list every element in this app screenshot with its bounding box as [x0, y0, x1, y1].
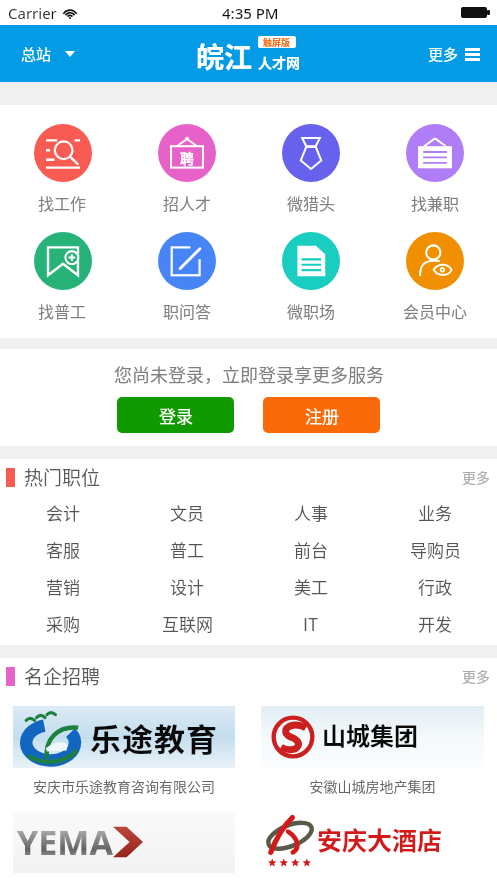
- staticText: 业务: [418, 504, 452, 524]
- staticText: 人事: [294, 504, 328, 524]
- staticText: 人才网: [258, 52, 300, 72]
- staticText: 招人才: [163, 196, 212, 213]
- staticText: 安徽山城房地产集团: [261, 776, 484, 796]
- staticText: 设计: [170, 578, 204, 598]
- staticText: 行政: [418, 578, 452, 598]
- staticText: 文员: [170, 504, 204, 524]
- button[interactable]: 会计: [0, 495, 125, 532]
- staticText: 职问答: [163, 304, 212, 321]
- button[interactable]: 微猎头: [249, 105, 373, 213]
- button[interactable]: 业务: [373, 495, 497, 532]
- staticText: 4:35 PM: [222, 3, 279, 23]
- staticText: 皖江: [196, 36, 253, 77]
- button[interactable]: 互联网: [125, 606, 249, 643]
- button[interactable]: IT: [249, 606, 373, 643]
- staticText: 热门职位: [24, 463, 101, 491]
- staticText: 更多: [462, 668, 490, 685]
- button[interactable]: 客服: [0, 532, 125, 569]
- staticText: 会员中心: [403, 304, 468, 321]
- staticText: 微职场: [287, 304, 336, 321]
- staticText: 登录: [159, 403, 193, 428]
- button[interactable]: 文员: [125, 495, 249, 532]
- button[interactable]: 总站: [0, 33, 87, 75]
- button[interactable]: 山城集团: [261, 706, 484, 796]
- staticText: 安庆大酒店: [317, 829, 443, 855]
- button[interactable]: 聘: [125, 105, 249, 213]
- button[interactable]: 职问答: [125, 213, 249, 321]
- button[interactable]: 微职场: [249, 213, 373, 321]
- staticText: 总站: [21, 43, 52, 65]
- staticText: 营销: [46, 578, 80, 598]
- staticText: YEMA: [17, 819, 113, 865]
- button[interactable]: 导购员: [373, 532, 497, 569]
- button[interactable]: 行政: [373, 569, 497, 606]
- staticText: 找兼职: [411, 196, 460, 213]
- staticText: 客服: [46, 541, 80, 561]
- button[interactable]: 找普工: [0, 213, 125, 321]
- staticText: 更多: [462, 469, 490, 486]
- staticText: 开发: [418, 615, 452, 635]
- staticText: 互联网: [162, 615, 213, 635]
- button[interactable]: 人事: [249, 495, 373, 532]
- staticText: 采购: [46, 615, 80, 635]
- button[interactable]: 普工: [125, 532, 249, 569]
- staticText: 找普工: [38, 304, 87, 321]
- staticText: 您尚未登录，立即登录享更多服务: [114, 361, 384, 387]
- staticText: 注册: [305, 403, 339, 428]
- staticText: 乐途教育: [90, 715, 218, 760]
- button[interactable]: 美工: [249, 569, 373, 606]
- staticText: 山城集团: [322, 725, 418, 750]
- staticText: 触屏版: [263, 36, 291, 48]
- button[interactable]: 会员中心: [373, 213, 497, 321]
- button[interactable]: 安庆大酒店: [261, 811, 484, 883]
- button[interactable]: YEMA: [13, 811, 235, 883]
- button[interactable]: 更多: [455, 660, 497, 693]
- button[interactable]: 找工作: [0, 105, 125, 213]
- staticText: 更多: [428, 43, 459, 65]
- staticText: Carrier: [8, 3, 57, 23]
- button[interactable]: 采购: [0, 606, 125, 643]
- staticText: 安庆市乐途教育咨询有限公司: [13, 776, 235, 796]
- staticText: 美工: [294, 578, 328, 598]
- button[interactable]: 找兼职: [373, 105, 497, 213]
- staticText: 导购员: [410, 541, 461, 561]
- staticText: IT: [303, 615, 319, 635]
- button[interactable]: 注册: [263, 397, 380, 433]
- button[interactable]: 开发: [373, 606, 497, 643]
- button[interactable]: 设计: [125, 569, 249, 606]
- staticText: 微猎头: [287, 196, 336, 213]
- staticText: 名企招聘: [24, 662, 101, 690]
- staticText: 聘: [180, 148, 194, 168]
- staticText: 找工作: [38, 196, 87, 213]
- button[interactable]: 更多: [455, 461, 497, 494]
- staticText: 普工: [170, 541, 204, 561]
- button[interactable]: 乐途教育: [13, 706, 235, 796]
- staticText: 前台: [294, 541, 328, 561]
- staticText: 会计: [46, 504, 80, 524]
- button[interactable]: 登录: [117, 397, 234, 433]
- button[interactable]: 前台: [249, 532, 373, 569]
- button[interactable]: More menu: [416, 33, 497, 75]
- button[interactable]: 营销: [0, 569, 125, 606]
